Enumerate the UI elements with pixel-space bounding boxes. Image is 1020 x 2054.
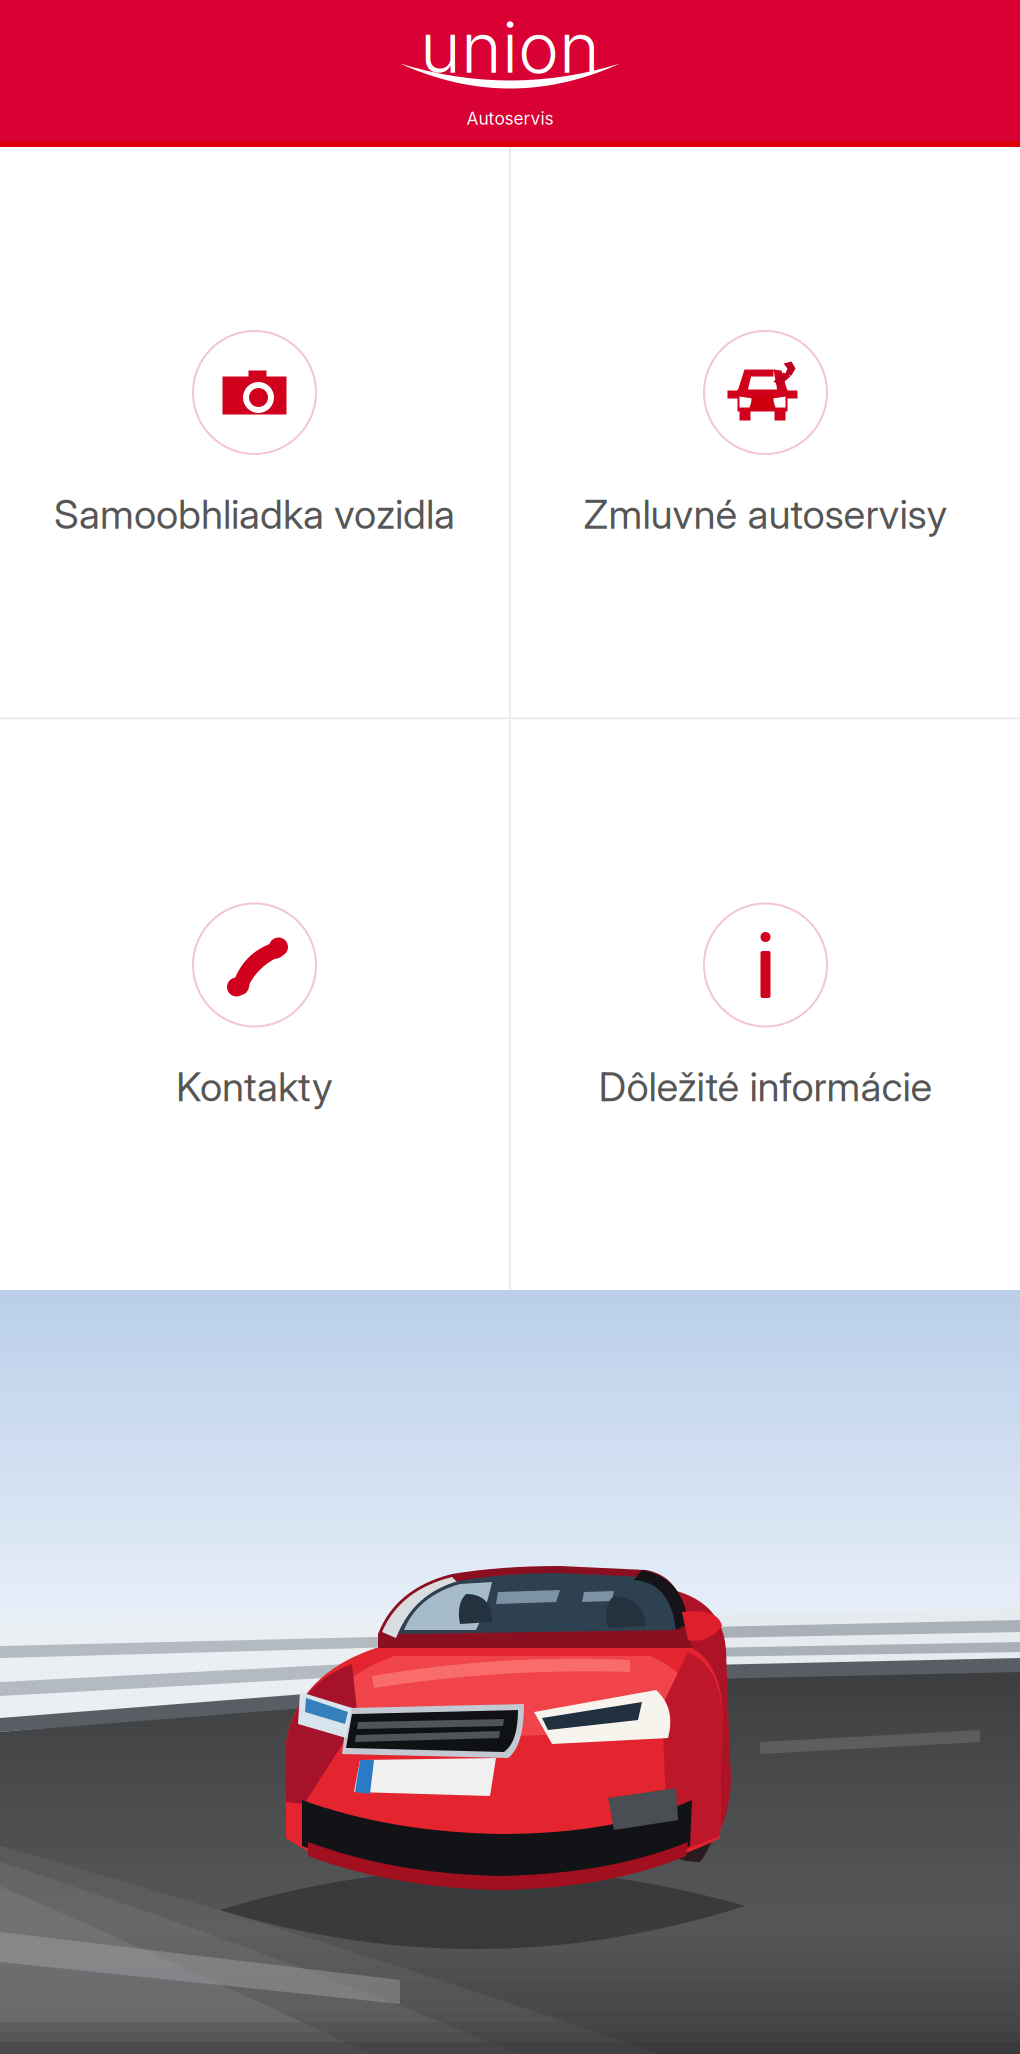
staticText: Samoobhliadka vozidla <box>54 490 455 538</box>
button[interactable]: Dôležité informácie <box>511 719 1020 1290</box>
staticText: Kontakty <box>176 1062 333 1111</box>
staticText: union <box>420 6 600 89</box>
button[interactable]: Kontakty <box>0 719 509 1290</box>
staticText: Dôležité informácie <box>598 1062 932 1111</box>
button[interactable]: Zmluvné autoservisy <box>511 147 1020 717</box>
staticText: Zmluvné autoservisy <box>583 490 947 538</box>
staticText: Autoservis <box>466 108 553 129</box>
button[interactable]: Samoobhliadka vozidla <box>0 147 509 717</box>
